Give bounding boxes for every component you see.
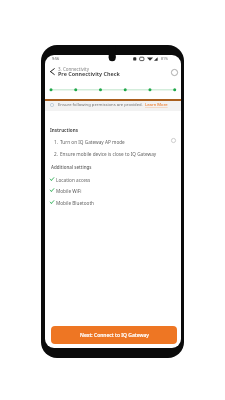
staticText: 81%	[161, 56, 169, 61]
button[interactable]: Back	[48, 67, 57, 76]
staticText: Instructions	[50, 127, 79, 133]
staticText: Mobile WiFi	[56, 188, 82, 194]
button[interactable]: Location access	[50, 175, 177, 183]
staticText: Additional settings	[51, 164, 92, 170]
staticText: Ensure mobile device is close to IQ Gate…	[60, 151, 157, 157]
staticText: Location access	[56, 177, 91, 183]
button[interactable]: Learn More	[145, 102, 168, 108]
button[interactable]: 2.	[50, 149, 177, 157]
button[interactable]: Mobile WiFi	[50, 186, 177, 194]
button[interactable]: Next: Connect to IQ Gateway	[51, 326, 177, 344]
staticText: 1.	[54, 139, 58, 145]
staticText: Pre Connectivity Check	[58, 70, 120, 77]
staticText: Next: Connect to IQ Gateway	[80, 332, 149, 339]
staticText: Mobile Bluetooth	[56, 200, 95, 206]
staticText: Ensure following permissions are provide…	[58, 102, 143, 108]
staticText: 2.	[54, 151, 58, 157]
button[interactable]: Mobile Bluetooth	[50, 198, 177, 206]
staticText: 3. Connectivity	[58, 66, 89, 72]
staticText: 9:56	[52, 56, 60, 61]
button[interactable]: Help	[170, 68, 178, 76]
staticText: Turn on IQ Gateway AP mode	[60, 139, 125, 145]
button[interactable]: 1.	[50, 137, 177, 145]
other: Toggle	[171, 138, 176, 143]
